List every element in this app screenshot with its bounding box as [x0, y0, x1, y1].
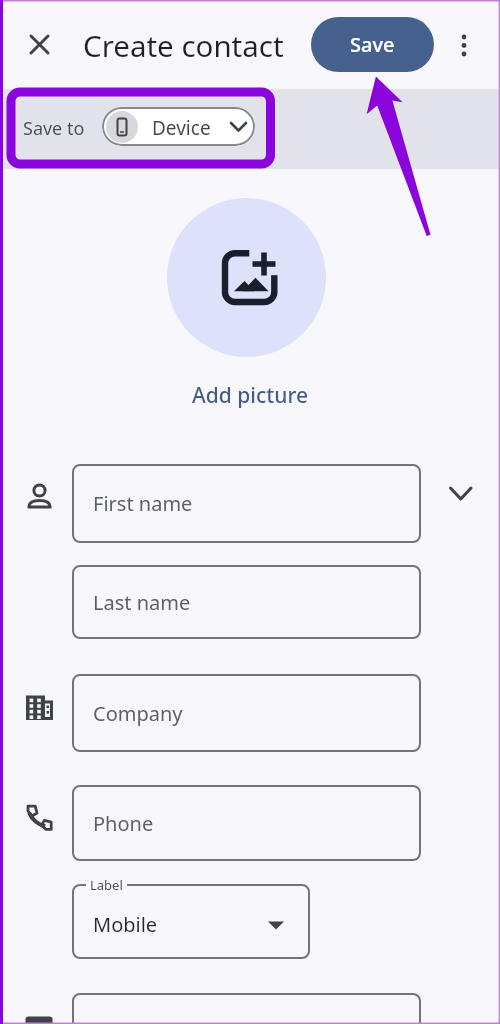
staticText: Label: [90, 876, 123, 894]
staticText: Save: [350, 31, 395, 58]
button[interactable]: [167, 198, 326, 357]
button[interactable]: Phone: [72, 785, 421, 861]
button[interactable]: [452, 30, 476, 60]
button[interactable]: Mobile: [72, 884, 310, 959]
staticText: Mobile: [93, 911, 158, 938]
button[interactable]: Save: [311, 17, 434, 72]
staticText: Company: [93, 700, 183, 727]
staticText: Phone: [93, 810, 154, 837]
staticText: Last name: [93, 589, 191, 616]
staticText: First name: [93, 490, 193, 517]
button[interactable]: [25, 30, 55, 60]
button[interactable]: Device: [102, 107, 255, 146]
button[interactable]: First name: [72, 464, 421, 543]
button[interactable]: [448, 485, 474, 503]
button[interactable]: Last name: [72, 565, 421, 639]
staticText: Add picture: [192, 381, 308, 410]
button[interactable]: Company: [72, 674, 421, 752]
staticText: Create contact: [83, 25, 284, 65]
button[interactable]: Add picture: [0, 380, 500, 410]
staticText: Device: [152, 115, 211, 141]
staticText: Save to: [23, 116, 85, 141]
